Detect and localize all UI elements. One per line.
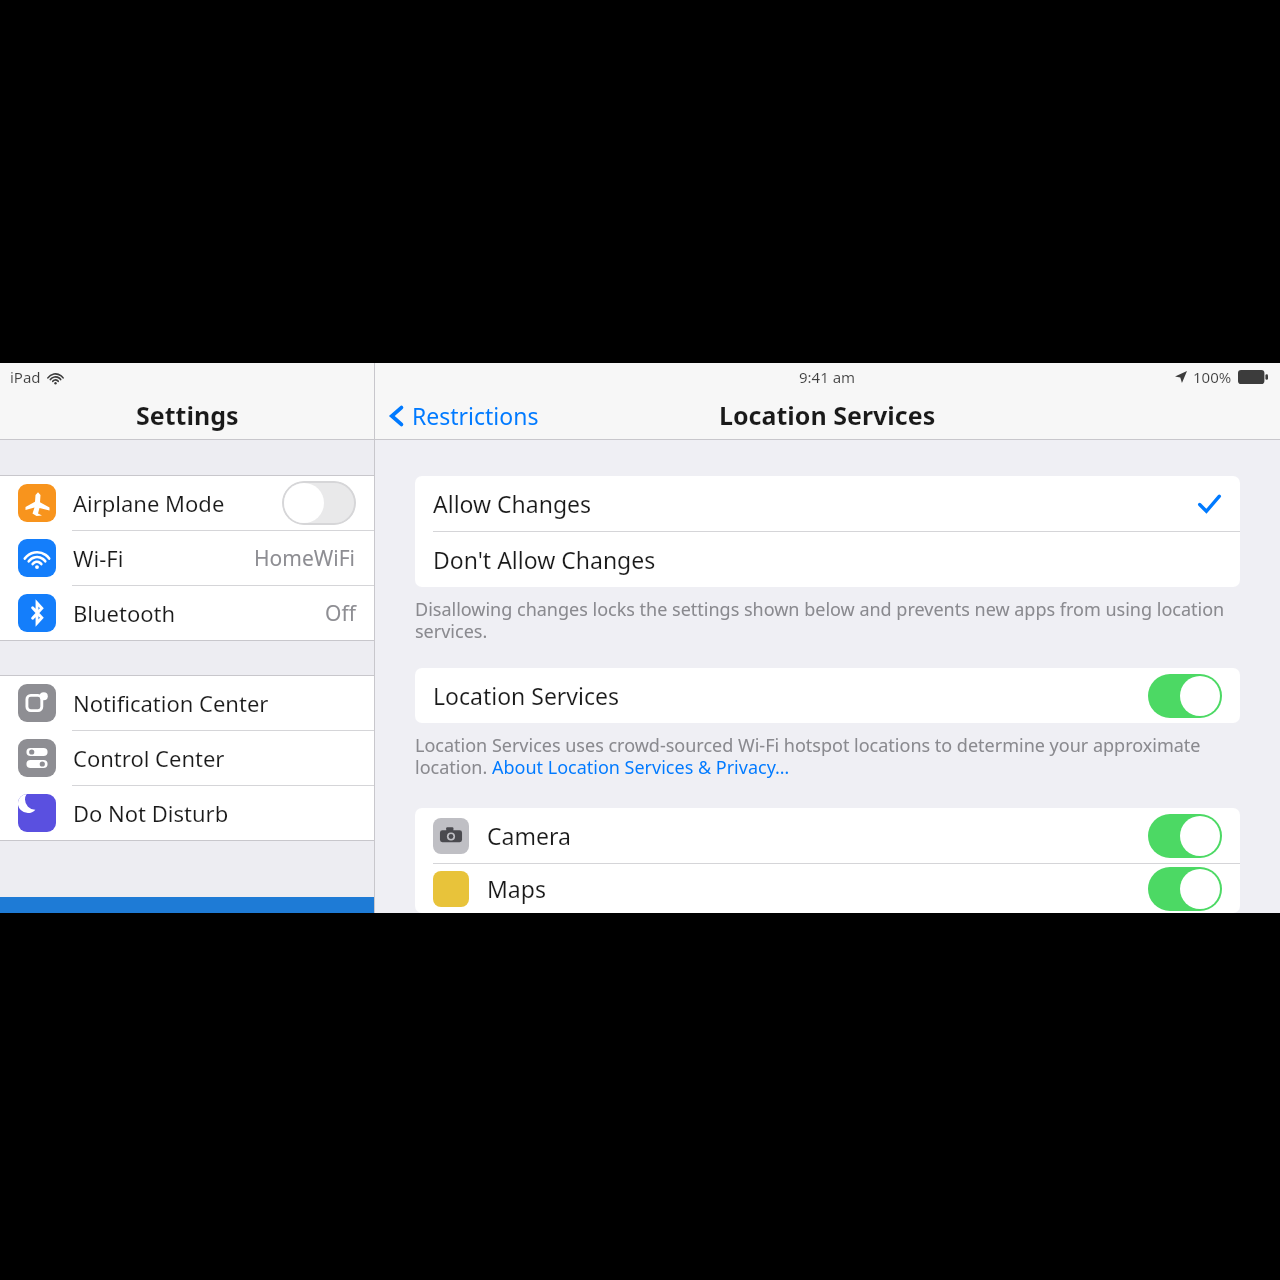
staticText: Disallowing changes locks the settings s… [415,597,1240,644]
staticText: Airplane Mode [73,488,225,518]
button[interactable]: Allow Changes [415,476,1240,531]
staticText: iPad [10,367,41,387]
button[interactable]: Toggle on [1148,814,1222,858]
staticText: 100% [1193,367,1232,387]
button[interactable]: Restrictions [375,394,549,437]
staticText: Do Not Disturb [73,798,229,828]
staticText: Allow Changes [433,488,592,519]
staticText: Location Services [433,680,620,711]
staticText: Don't Allow Changes [433,544,656,575]
staticText: 9:41 am [799,367,856,387]
button[interactable]: Notification Center [0,676,374,730]
staticText: Camera [487,820,571,851]
button[interactable]: Toggle on [1148,674,1222,718]
staticText: Restrictions [412,400,539,431]
staticText: Location Services uses crowd-sourced Wi-… [415,733,1240,780]
staticText: Wi-Fi [73,543,124,573]
button[interactable]: Location Services [415,668,1240,723]
staticText: Settings [136,398,239,432]
button[interactable]: Airplane Mode [0,476,374,530]
button[interactable]: Toggle on [1148,867,1222,911]
button[interactable]: Camera [415,808,1240,863]
button[interactable]: Wi-Fi [0,531,374,585]
button[interactable]: Toggle off [282,481,356,525]
staticText: Location Services [719,398,936,432]
button[interactable]: Do Not Disturb [0,786,374,840]
staticText: Maps [487,873,546,904]
staticText: Bluetooth [73,598,176,628]
button[interactable]: Control Center [0,731,374,785]
staticText: Off [325,599,356,628]
staticText: HomeWiFi [254,544,356,573]
button[interactable]: Maps [415,864,1240,913]
button[interactable]: Don't Allow Changes [415,532,1240,587]
button[interactable]: Bluetooth [0,586,374,640]
staticText: Notification Center [73,688,269,718]
staticText: Control Center [73,743,225,773]
